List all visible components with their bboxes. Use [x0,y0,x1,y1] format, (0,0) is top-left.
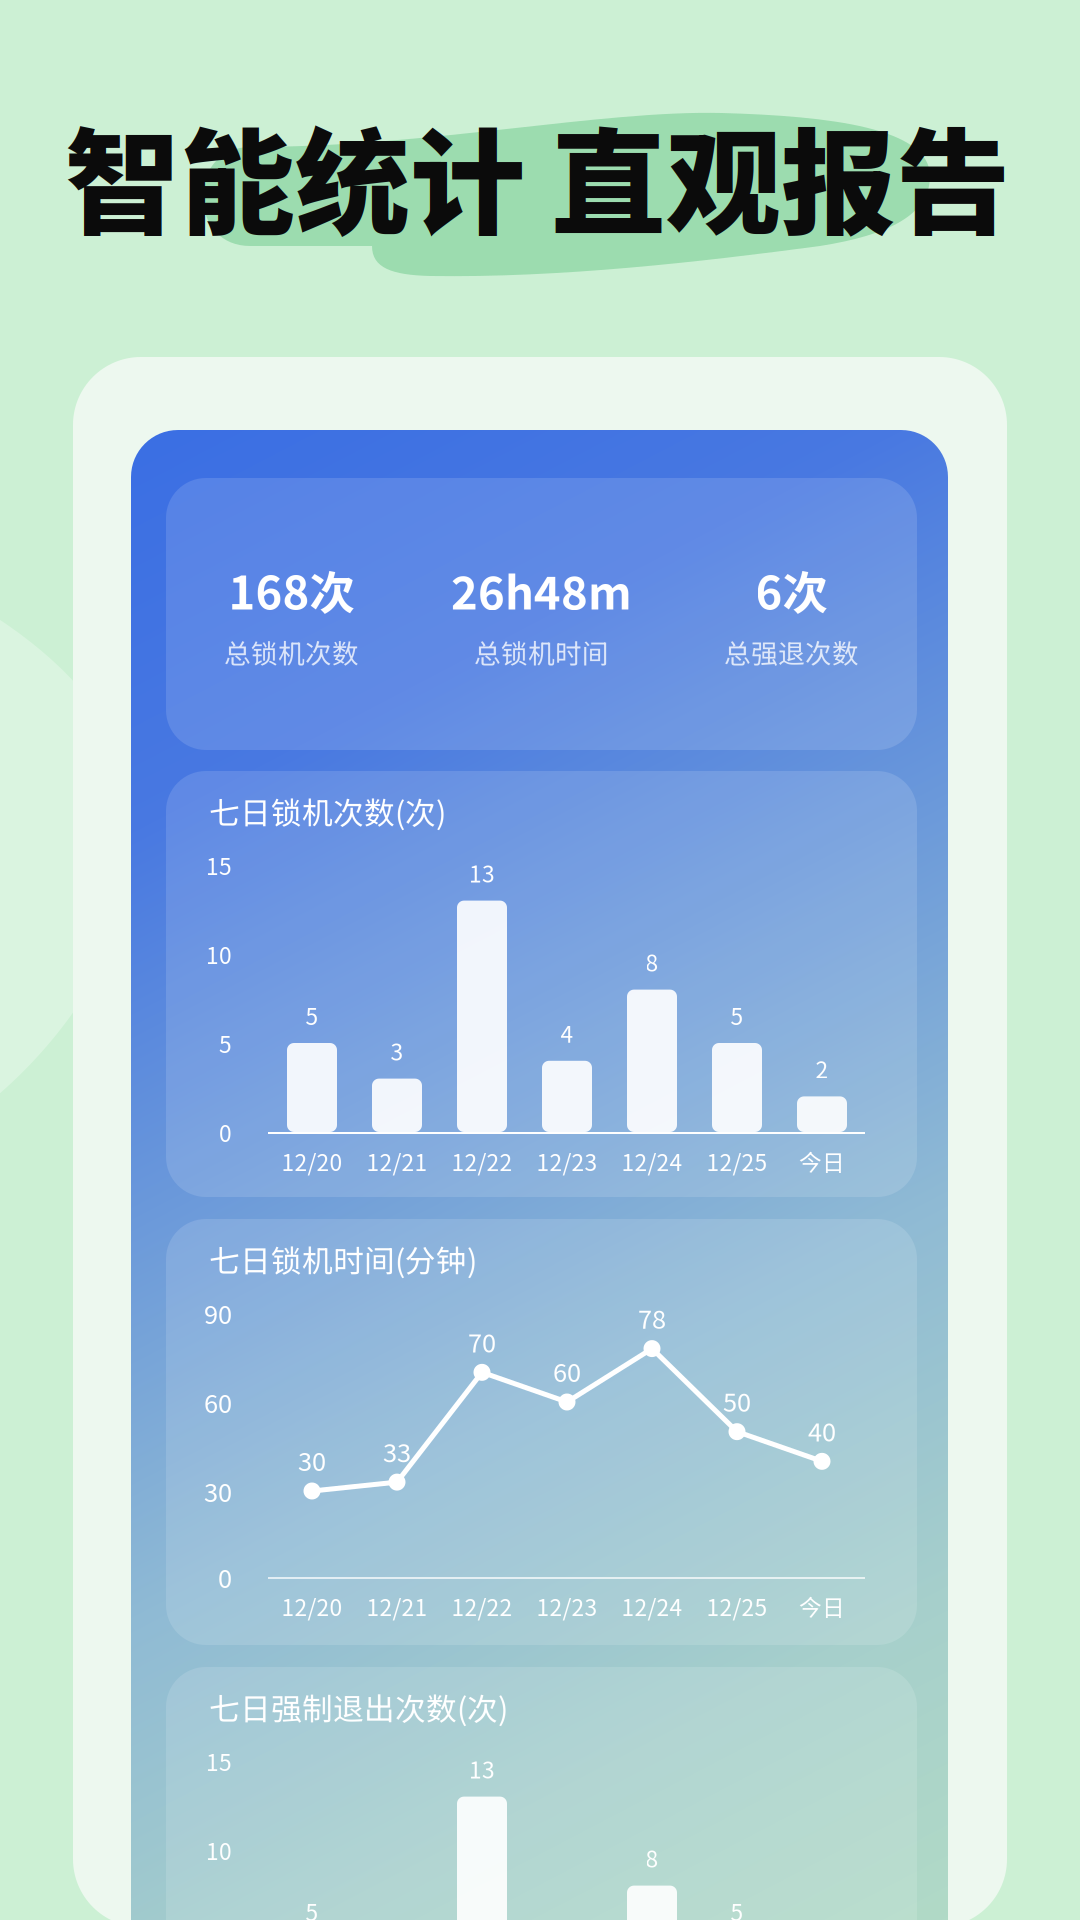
staticText: 8 [645,1841,658,1874]
staticText: 0 [219,1116,232,1148]
staticText: 今日 [799,1145,845,1177]
staticText: 12/25 [706,1145,767,1177]
staticText: 13 [469,856,495,889]
staticText: 15 [206,849,232,881]
staticText: 七日锁机时间(分钟) [209,1237,477,1281]
staticText: 12/24 [621,1145,682,1177]
staticText: 30 [204,1473,232,1509]
staticText: 12/23 [536,1145,597,1177]
staticText: 3 [390,1034,403,1067]
staticText: 总锁机次数 [224,632,359,671]
staticText: 33 [383,1433,411,1469]
staticText: 12/25 [706,1590,767,1622]
staticText: 60 [553,1353,581,1389]
staticText: 8 [645,945,658,978]
staticText: 12/21 [366,1590,427,1622]
staticText: 0 [218,1559,232,1595]
staticText: 13 [469,1752,495,1785]
staticText: 26h48m [451,557,632,622]
staticText: 12/22 [451,1145,512,1177]
staticText: 12/20 [281,1590,342,1622]
staticText: 12/24 [621,1590,682,1622]
staticText: 5 [305,1895,318,1920]
staticText: 总强退次数 [724,632,859,671]
staticText: 10 [206,938,232,970]
staticText: 50 [723,1382,751,1419]
staticText: 12/23 [536,1590,597,1622]
staticText: 10 [206,1834,232,1866]
staticText: 15 [206,1745,232,1777]
staticText: 今日 [799,1590,845,1622]
staticText: 12/21 [366,1145,427,1177]
staticText: 30 [298,1442,326,1478]
staticText: 5 [219,1027,232,1059]
staticText: 70 [468,1323,496,1360]
staticText: 5 [730,999,743,1031]
staticText: 总锁机时间 [474,632,609,671]
staticText: 5 [730,1895,743,1920]
staticText: 60 [204,1384,232,1420]
staticText: 78 [638,1299,666,1336]
staticText: 6次 [755,557,827,622]
staticText: 七日锁机次数(次) [209,789,446,833]
staticText: 12/20 [281,1145,342,1177]
staticText: 4 [560,1016,573,1049]
staticText: 5 [305,999,318,1031]
staticText: 12/22 [451,1590,512,1622]
staticText: 40 [808,1412,836,1449]
staticText: 168次 [228,557,354,622]
staticText: 智能统计 直观报告 [65,92,1011,258]
staticText: 90 [204,1295,232,1331]
staticText: 七日强制退出次数(次) [209,1685,508,1729]
staticText: 2 [815,1052,828,1085]
